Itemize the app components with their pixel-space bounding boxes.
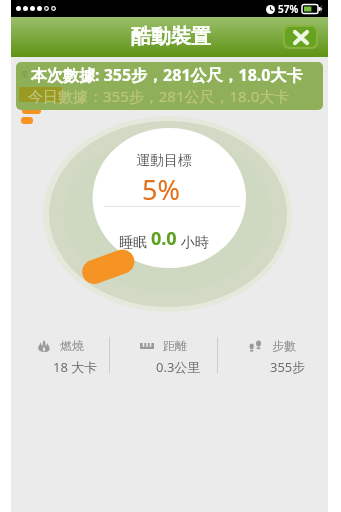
staticText: 酷動裝置 — [131, 24, 211, 49]
staticText: 18 大卡 — [53, 358, 98, 376]
staticText: 0.0 — [151, 226, 177, 251]
button[interactable]: 步數 — [217, 330, 328, 382]
staticText: 電 — [20, 69, 28, 79]
staticText: 0.3公里 — [156, 358, 201, 376]
staticText: 本次數據: 355步，281公尺，18.0大卡 — [31, 64, 303, 86]
button[interactable]: Close — [283, 25, 318, 49]
button[interactable]: 距離 — [109, 330, 217, 382]
staticText: 今日數據：355步，281公尺，18.0大卡 — [28, 86, 290, 106]
staticText: 小時 — [177, 232, 209, 251]
staticText: 睡眠 — [119, 232, 151, 251]
staticText: 57% — [278, 2, 299, 16]
staticText: 5% — [142, 171, 180, 208]
staticText: 燃燒 — [60, 338, 84, 353]
staticText: 步數 — [272, 338, 296, 353]
button[interactable]: 燃燒 — [11, 330, 109, 382]
staticText: 距離 — [163, 338, 187, 353]
button[interactable]: 電 — [16, 62, 323, 110]
staticText: 355步 — [270, 358, 306, 376]
staticText: 運動目標 — [136, 152, 192, 170]
